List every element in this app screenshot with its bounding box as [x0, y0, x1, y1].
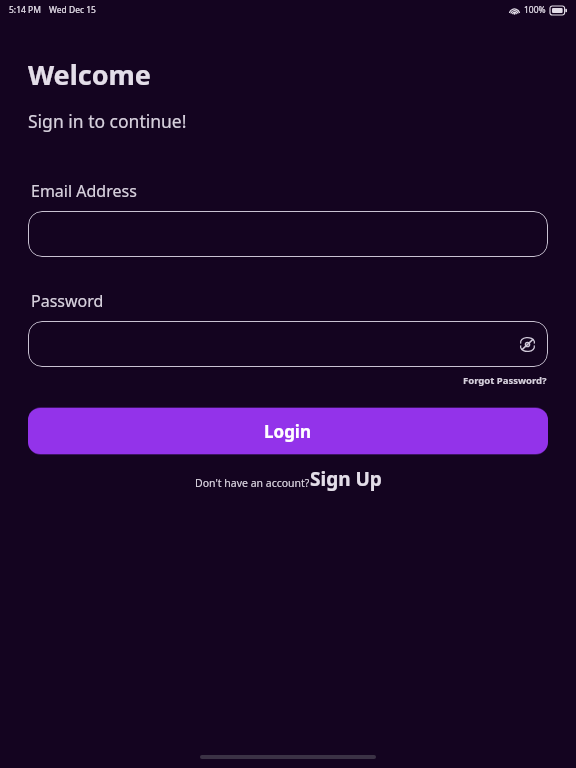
staticText: Sign Up: [310, 466, 382, 492]
button[interactable]: Login: [28, 408, 548, 454]
staticText: Welcome: [28, 56, 151, 93]
staticText: Don't have an account?: [195, 476, 310, 490]
staticText: Sign in to continue!: [28, 109, 187, 133]
button[interactable]: Password input field: [28, 321, 548, 367]
staticText: 100%: [524, 4, 546, 16]
button[interactable]: Forgot Password?: [463, 374, 547, 387]
staticText: Wed Dec 15: [49, 4, 96, 16]
staticText: 5:14 PM: [9, 4, 41, 16]
button[interactable]: Sign Up: [310, 466, 382, 492]
staticText: Login: [264, 420, 312, 443]
staticText: Password: [31, 290, 104, 312]
button[interactable]: Show password: [514, 331, 540, 357]
staticText: Email Address: [31, 180, 137, 202]
button[interactable]: Email Address input field: [28, 211, 548, 257]
staticText: Forgot Password?: [463, 374, 547, 387]
